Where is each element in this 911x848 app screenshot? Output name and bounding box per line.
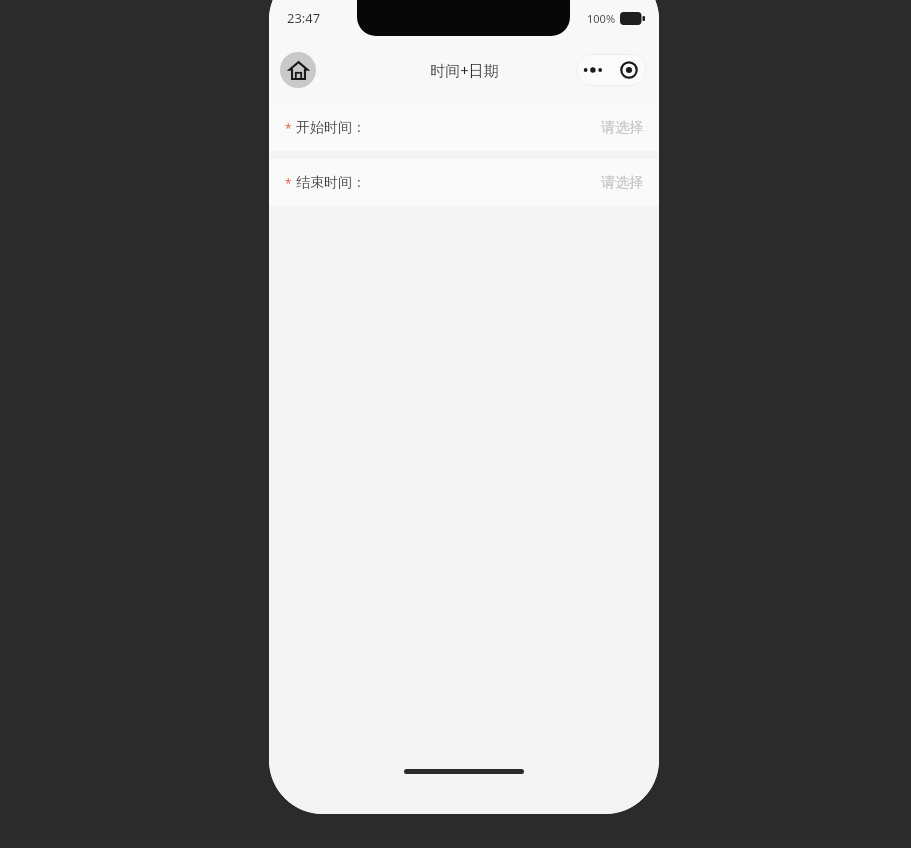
staticText: 23:47 [287,9,321,27]
button[interactable]: * [269,104,659,151]
staticText: 100% [587,11,616,26]
staticText: 结束时间： [296,174,366,192]
button[interactable]: More [576,54,611,86]
button[interactable]: * [269,159,659,206]
staticText: 请选择 [601,119,643,137]
button[interactable]: Close [611,54,647,86]
button[interactable]: Home [280,52,316,88]
staticText: * [285,175,292,191]
staticText: 请选择 [601,174,643,192]
staticText: * [285,120,292,136]
staticText: 时间+日期 [430,60,499,80]
staticText: 开始时间： [296,119,366,137]
